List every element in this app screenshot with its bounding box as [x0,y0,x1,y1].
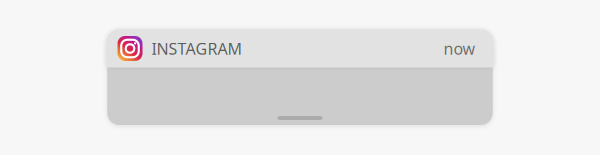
staticText: INSTAGRAM [151,38,242,59]
button[interactable]: INSTAGRAM [106,29,493,125]
staticText: now [443,38,475,59]
